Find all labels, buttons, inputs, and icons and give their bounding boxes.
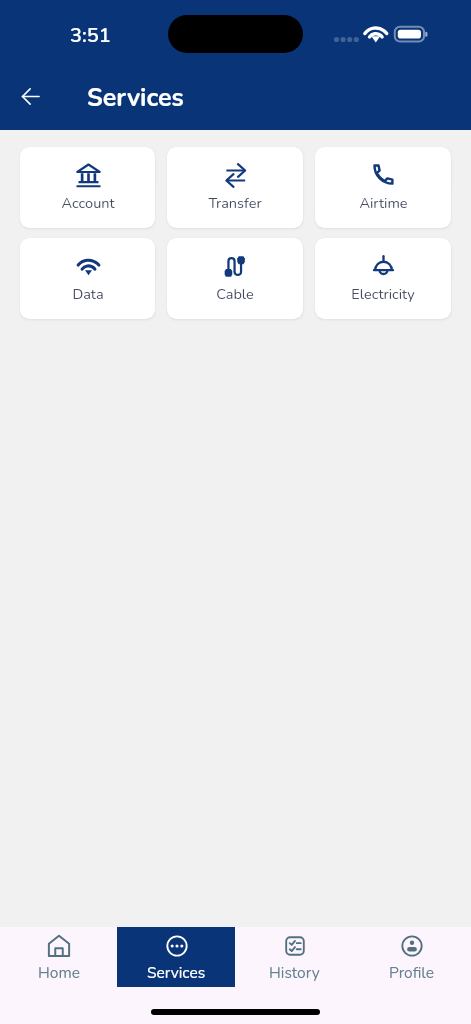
button[interactable]: Airtime: [315, 147, 451, 228]
staticText: Services: [87, 81, 184, 115]
staticText: 3:51: [70, 22, 111, 49]
button[interactable]: Back: [6, 72, 55, 121]
staticText: Account: [61, 193, 115, 213]
staticText: Services: [147, 962, 206, 983]
staticText: Data: [72, 284, 104, 304]
button[interactable]: Cable: [167, 238, 303, 319]
button[interactable]: Data: [20, 238, 155, 319]
staticText: Airtime: [359, 193, 408, 213]
button[interactable]: Services: [117, 927, 235, 987]
staticText: History: [269, 962, 320, 983]
staticText: Cable: [216, 284, 254, 304]
button[interactable]: Home: [0, 927, 117, 987]
staticText: Transfer: [208, 193, 262, 213]
button[interactable]: Electricity: [315, 238, 451, 319]
button[interactable]: Profile: [353, 927, 471, 987]
staticText: Electricity: [351, 284, 415, 304]
button[interactable]: Account: [20, 147, 155, 228]
button[interactable]: History: [235, 927, 353, 987]
staticText: Home: [38, 962, 80, 983]
staticText: Profile: [389, 962, 435, 983]
button[interactable]: Transfer: [167, 147, 303, 228]
